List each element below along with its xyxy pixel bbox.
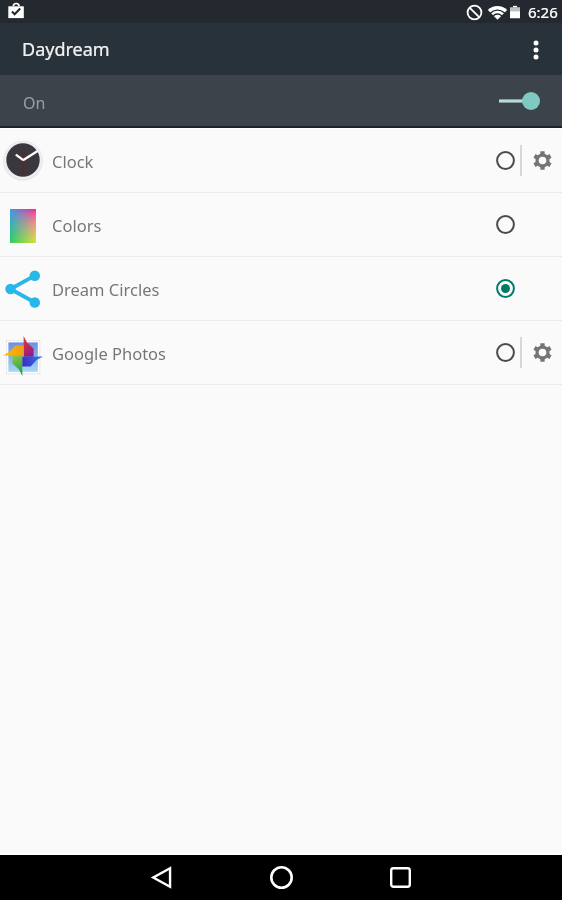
button[interactable]: Select Google Photos bbox=[487, 321, 523, 384]
button[interactable]: Google Photos bbox=[0, 321, 562, 384]
button[interactable]: Back bbox=[122, 855, 202, 900]
staticText: On bbox=[23, 92, 46, 114]
button[interactable]: Settings for Google Photos bbox=[522, 321, 562, 384]
button[interactable]: On bbox=[0, 75, 562, 126]
staticText: Google Photos bbox=[52, 342, 166, 364]
button[interactable]: Home bbox=[241, 855, 321, 900]
staticText: 6:26 bbox=[528, 2, 558, 22]
button[interactable]: Colors bbox=[0, 193, 562, 256]
staticText: Daydream bbox=[22, 37, 110, 62]
button[interactable]: Recent apps bbox=[360, 855, 440, 900]
button[interactable]: Settings for Clock bbox=[522, 129, 562, 192]
button[interactable]: More options bbox=[514, 25, 562, 73]
button[interactable]: Clock bbox=[0, 129, 562, 192]
button[interactable]: Select Dream Circles bbox=[487, 257, 523, 320]
button[interactable]: Select Clock bbox=[487, 129, 523, 192]
button[interactable]: Select Colors bbox=[487, 193, 523, 256]
staticText: Colors bbox=[52, 214, 102, 236]
staticText: Dream Circles bbox=[52, 278, 160, 300]
button[interactable]: Dream Circles bbox=[0, 257, 562, 320]
staticText: Clock bbox=[52, 150, 94, 172]
